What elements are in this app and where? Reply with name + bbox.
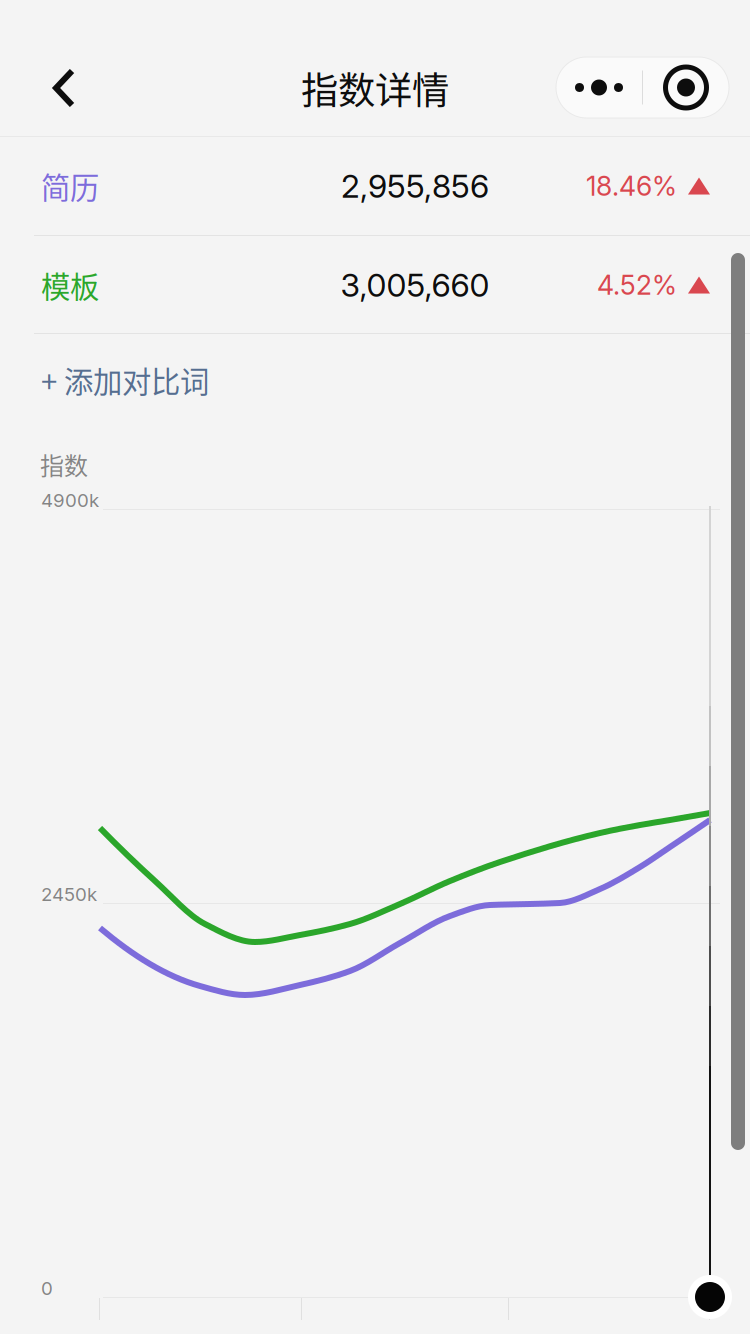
staticText: 18.46% (586, 170, 677, 202)
staticText: 指数详情 (301, 61, 449, 115)
staticText: 2,955,856 (341, 167, 489, 205)
button[interactable]: 模板 (0, 236, 750, 334)
staticText: 0 (41, 1277, 53, 1300)
button[interactable]: 简历 (0, 137, 750, 235)
button[interactable]: Mini program menu (643, 57, 729, 118)
button[interactable]: More options (556, 57, 642, 118)
staticText: 指数 (40, 447, 88, 482)
staticText: 4.52% (597, 269, 677, 301)
staticText: + 添加对比词 (41, 359, 209, 401)
button[interactable]: Back (19, 44, 109, 132)
staticText: 4900k (41, 489, 99, 512)
staticText: 2450k (41, 883, 97, 906)
button[interactable]: + 添加对比词 (0, 335, 750, 425)
staticText: 模板 (41, 264, 99, 306)
staticText: 3,005,660 (340, 266, 489, 304)
staticText: 简历 (41, 165, 99, 207)
